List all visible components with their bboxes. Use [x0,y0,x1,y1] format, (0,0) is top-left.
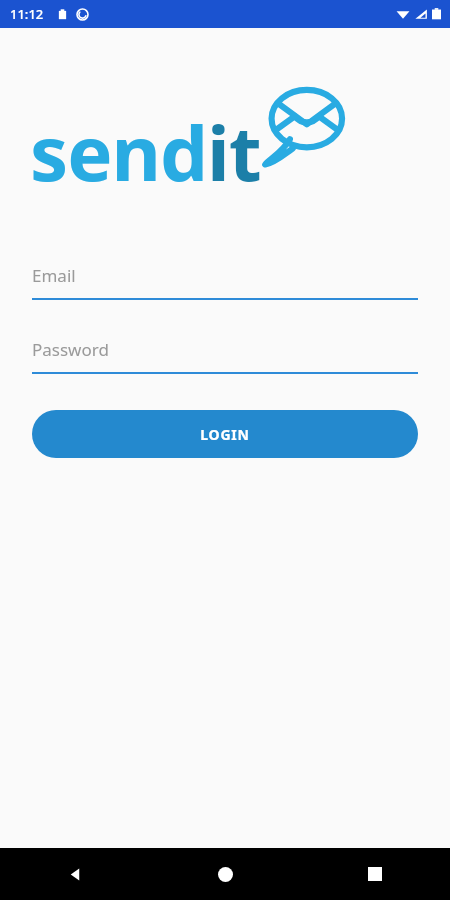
staticText: LOGIN [200,425,250,444]
staticText: send [30,100,207,204]
button[interactable]: Email [32,258,418,300]
button[interactable]: Password [32,332,418,374]
staticText: Email [32,264,76,287]
button[interactable]: LOGIN [32,410,418,458]
button[interactable]: Back [0,848,150,900]
staticText: it [207,100,261,204]
staticText: 11:12 [10,5,44,23]
staticText: Password [32,338,109,361]
button[interactable]: Home [150,848,300,900]
button[interactable]: Recent apps [300,848,450,900]
